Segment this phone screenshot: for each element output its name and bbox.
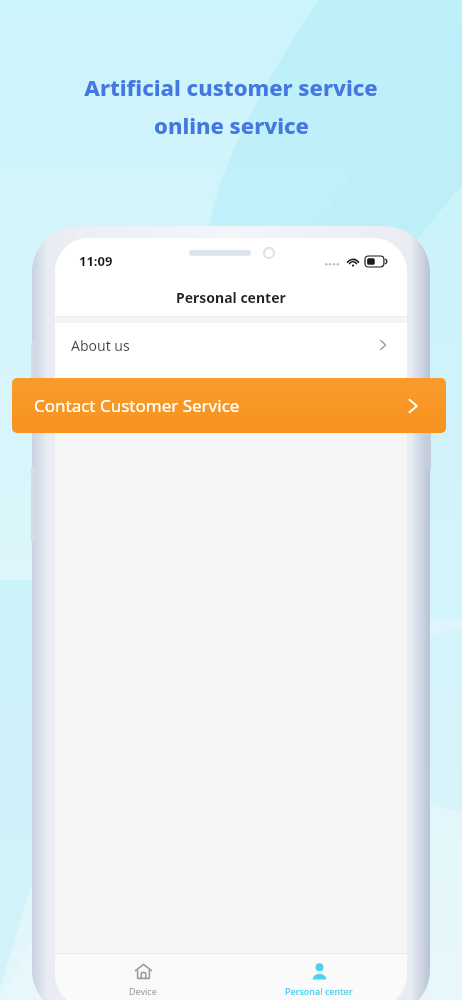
staticText: Artificial customer service <box>84 72 378 102</box>
staticText: Personal center <box>285 985 353 997</box>
staticText: Personal center <box>176 288 286 307</box>
staticText: Contact Customer Service <box>34 394 240 417</box>
button[interactable]: About us <box>55 323 407 367</box>
button[interactable]: Personal center <box>231 954 407 1000</box>
staticText: Device <box>129 985 157 997</box>
staticText: 11:09 <box>79 252 113 270</box>
staticText: About us <box>71 336 130 355</box>
button[interactable]: Contact Customer Service <box>12 378 446 433</box>
staticText: online service <box>154 110 309 140</box>
button[interactable]: Device <box>55 954 231 1000</box>
